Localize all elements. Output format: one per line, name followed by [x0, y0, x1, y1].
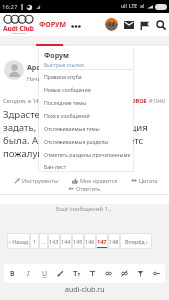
button[interactable]: Правила клуба	[39, 70, 133, 83]
button[interactable]: Audi Club	[2, 15, 35, 35]
staticText: Вперёд ›	[125, 238, 148, 245]
staticText: Инструменты	[22, 177, 59, 184]
button[interactable]: Инструменты	[13, 176, 60, 185]
staticText: Цитата	[139, 177, 158, 184]
staticText: Мне нравится	[80, 177, 118, 184]
staticText: B	[10, 269, 15, 279]
button[interactable]: Text style	[87, 265, 98, 282]
staticText: LTE	[129, 3, 138, 10]
button[interactable]: 148	[108, 233, 120, 249]
staticText: Ещё сообщений 1...	[56, 205, 113, 213]
button[interactable]: 145	[72, 233, 84, 249]
staticText: Арсений	[27, 63, 59, 73]
staticText: 143	[49, 238, 59, 245]
staticText: ..	[42, 238, 45, 245]
staticText: Начинающий	[27, 75, 64, 82]
button[interactable]: Форум	[39, 47, 133, 69]
staticText: 145	[73, 238, 83, 245]
button[interactable]: Цитата	[130, 176, 159, 185]
staticText: U	[42, 269, 48, 279]
button[interactable]: Ответить	[67, 184, 102, 193]
button[interactable]: Последние темы	[39, 96, 133, 109]
button[interactable]: 1	[30, 233, 39, 249]
button[interactable]: Attach	[151, 265, 162, 282]
staticText: Бан-лист	[44, 163, 67, 170]
button[interactable]: Flag	[138, 17, 151, 33]
staticText: audi-club.ru	[65, 285, 105, 295]
button[interactable]: Profile	[105, 18, 118, 31]
staticText: 16:27	[2, 3, 18, 11]
button[interactable]: Отслеживаемые разделы	[39, 135, 133, 148]
staticText: 146	[85, 238, 95, 245]
staticText: 148	[109, 238, 119, 245]
staticText: Быстрые ссылки	[44, 62, 84, 69]
button[interactable]: Поиск сообщений	[39, 109, 133, 122]
staticText: Отслеживаемые темы	[44, 125, 100, 132]
button[interactable]: ФОРУМ	[39, 20, 67, 30]
button[interactable]: Brush	[55, 265, 66, 282]
button[interactable]: Clear formatting	[135, 265, 146, 282]
staticText: Отслеживаемые разделы	[44, 138, 109, 145]
staticText: ‹ Назад	[9, 238, 29, 245]
button[interactable]: ..	[39, 233, 48, 249]
button[interactable]: Новые сообщения	[39, 83, 133, 96]
button[interactable]: Messages	[122, 17, 135, 33]
button[interactable]: Отслеживаемые темы	[39, 122, 133, 135]
staticText: I	[27, 269, 30, 279]
staticText: 1	[33, 238, 37, 245]
button[interactable]: Бан-лист	[39, 161, 133, 171]
button[interactable]: B	[7, 265, 18, 282]
button[interactable]: Отметить разделы прочитанными	[39, 148, 133, 161]
button[interactable]: 143	[48, 233, 60, 249]
staticText: Правила клуба	[44, 73, 82, 80]
button[interactable]: More options	[70, 18, 82, 32]
staticText: Новые сообщения	[44, 86, 91, 93]
button[interactable]: Link	[103, 265, 114, 282]
button[interactable]: ‹ Назад	[7, 233, 30, 249]
button[interactable]: I	[23, 265, 34, 282]
staticText: Форум	[44, 51, 69, 61]
staticText: Сегодня, в 14:23	[3, 97, 47, 104]
staticText: al	[140, 3, 145, 10]
staticText: Отметить разделы прочитанными	[44, 151, 130, 158]
button[interactable]: U	[39, 265, 50, 282]
staticText: Ответить	[76, 185, 101, 192]
staticText: 147	[97, 238, 107, 245]
staticText: НОВОЕ	[127, 97, 147, 104]
button[interactable]: 144	[60, 233, 72, 249]
staticText: Поиск сообщений	[44, 112, 90, 119]
button[interactable]: Мне нравится	[71, 176, 119, 185]
staticText: ull	[121, 3, 127, 10]
button[interactable]: 147	[96, 233, 108, 249]
button[interactable]: Unlink	[119, 265, 130, 282]
button[interactable]: Font size	[71, 265, 82, 282]
staticText: Последние темы	[44, 99, 87, 106]
staticText: Audi Club	[3, 24, 34, 33]
button[interactable]: Вперёд ›	[120, 233, 152, 249]
staticText: #1940	[149, 97, 166, 104]
button[interactable]: Search	[154, 17, 167, 33]
staticText: 144	[61, 238, 71, 245]
staticText: Здрасте! Хотел у вас вопрос задать, возм…	[3, 108, 169, 160]
button[interactable]: 146	[84, 233, 96, 249]
